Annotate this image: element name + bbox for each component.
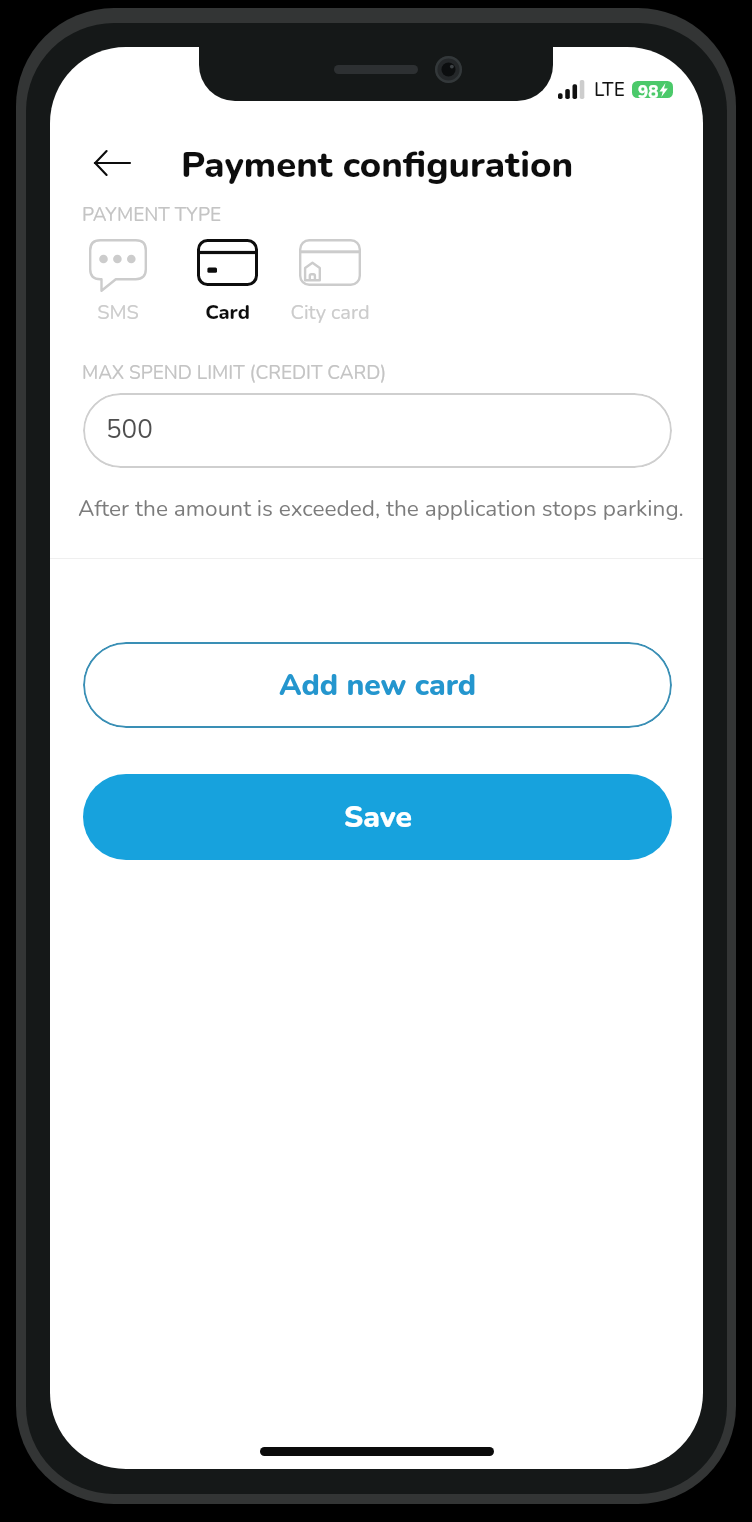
- button[interactable]: Save: [83, 774, 672, 860]
- staticText: PAYMENT TYPE: [82, 202, 221, 228]
- staticText: Card: [205, 299, 250, 326]
- button[interactable]: 500: [83, 393, 672, 468]
- staticText: 98: [638, 81, 659, 98]
- staticText: SMS: [97, 299, 139, 326]
- staticText: Payment configuration: [181, 140, 574, 190]
- button[interactable]: SMS: [66, 239, 170, 326]
- button[interactable]: City card: [265, 239, 395, 326]
- staticText: After the amount is exceeded, the applic…: [78, 493, 684, 524]
- button[interactable]: Add new card: [83, 642, 672, 728]
- staticText: LTE: [594, 77, 625, 101]
- staticText: Save: [344, 797, 412, 838]
- staticText: City card: [290, 299, 370, 326]
- staticText: 500: [106, 412, 153, 447]
- staticText: Add new card: [279, 665, 477, 706]
- button[interactable]: Card: [175, 239, 279, 326]
- staticText: MAX SPEND LIMIT (CREDIT CARD): [82, 360, 387, 386]
- button[interactable]: Back: [85, 136, 139, 190]
